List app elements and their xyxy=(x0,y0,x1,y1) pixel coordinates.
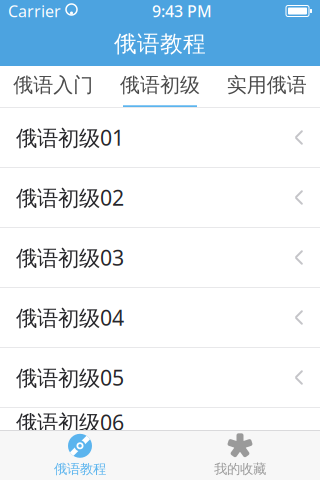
staticText: 俄语初级05 xyxy=(16,363,124,392)
button[interactable]: 俄语教程 xyxy=(0,431,160,480)
staticText: 俄语初级06 xyxy=(16,408,124,436)
button[interactable]: 俄语初级06 xyxy=(0,408,320,428)
staticText: 俄语初级03 xyxy=(16,243,124,272)
staticText: 我的收藏 xyxy=(214,461,266,477)
button[interactable]: 我的收藏 xyxy=(160,431,320,480)
staticText: 俄语初级 xyxy=(120,73,200,97)
button[interactable]: 俄语初级02 xyxy=(0,168,320,228)
staticText: Carrier xyxy=(8,0,61,22)
staticText: 俄语教程 xyxy=(54,461,106,477)
staticText: 9:43 PM xyxy=(152,0,212,22)
button[interactable]: 俄语初级 xyxy=(107,66,213,107)
button[interactable]: 俄语初级03 xyxy=(0,228,320,288)
staticText: 俄语入门 xyxy=(13,73,93,97)
staticText: 俄语初级02 xyxy=(16,183,124,212)
staticText: 俄语初级01 xyxy=(16,123,124,152)
button[interactable]: 俄语初级04 xyxy=(0,288,320,348)
button[interactable]: 俄语初级01 xyxy=(0,108,320,168)
staticText: 实用俄语 xyxy=(227,73,307,97)
button[interactable]: 实用俄语 xyxy=(213,66,320,107)
staticText: 俄语初级04 xyxy=(16,303,124,332)
button[interactable]: 俄语入门 xyxy=(0,66,107,107)
button[interactable]: 俄语初级05 xyxy=(0,348,320,408)
staticText: 俄语教程 xyxy=(114,30,206,58)
